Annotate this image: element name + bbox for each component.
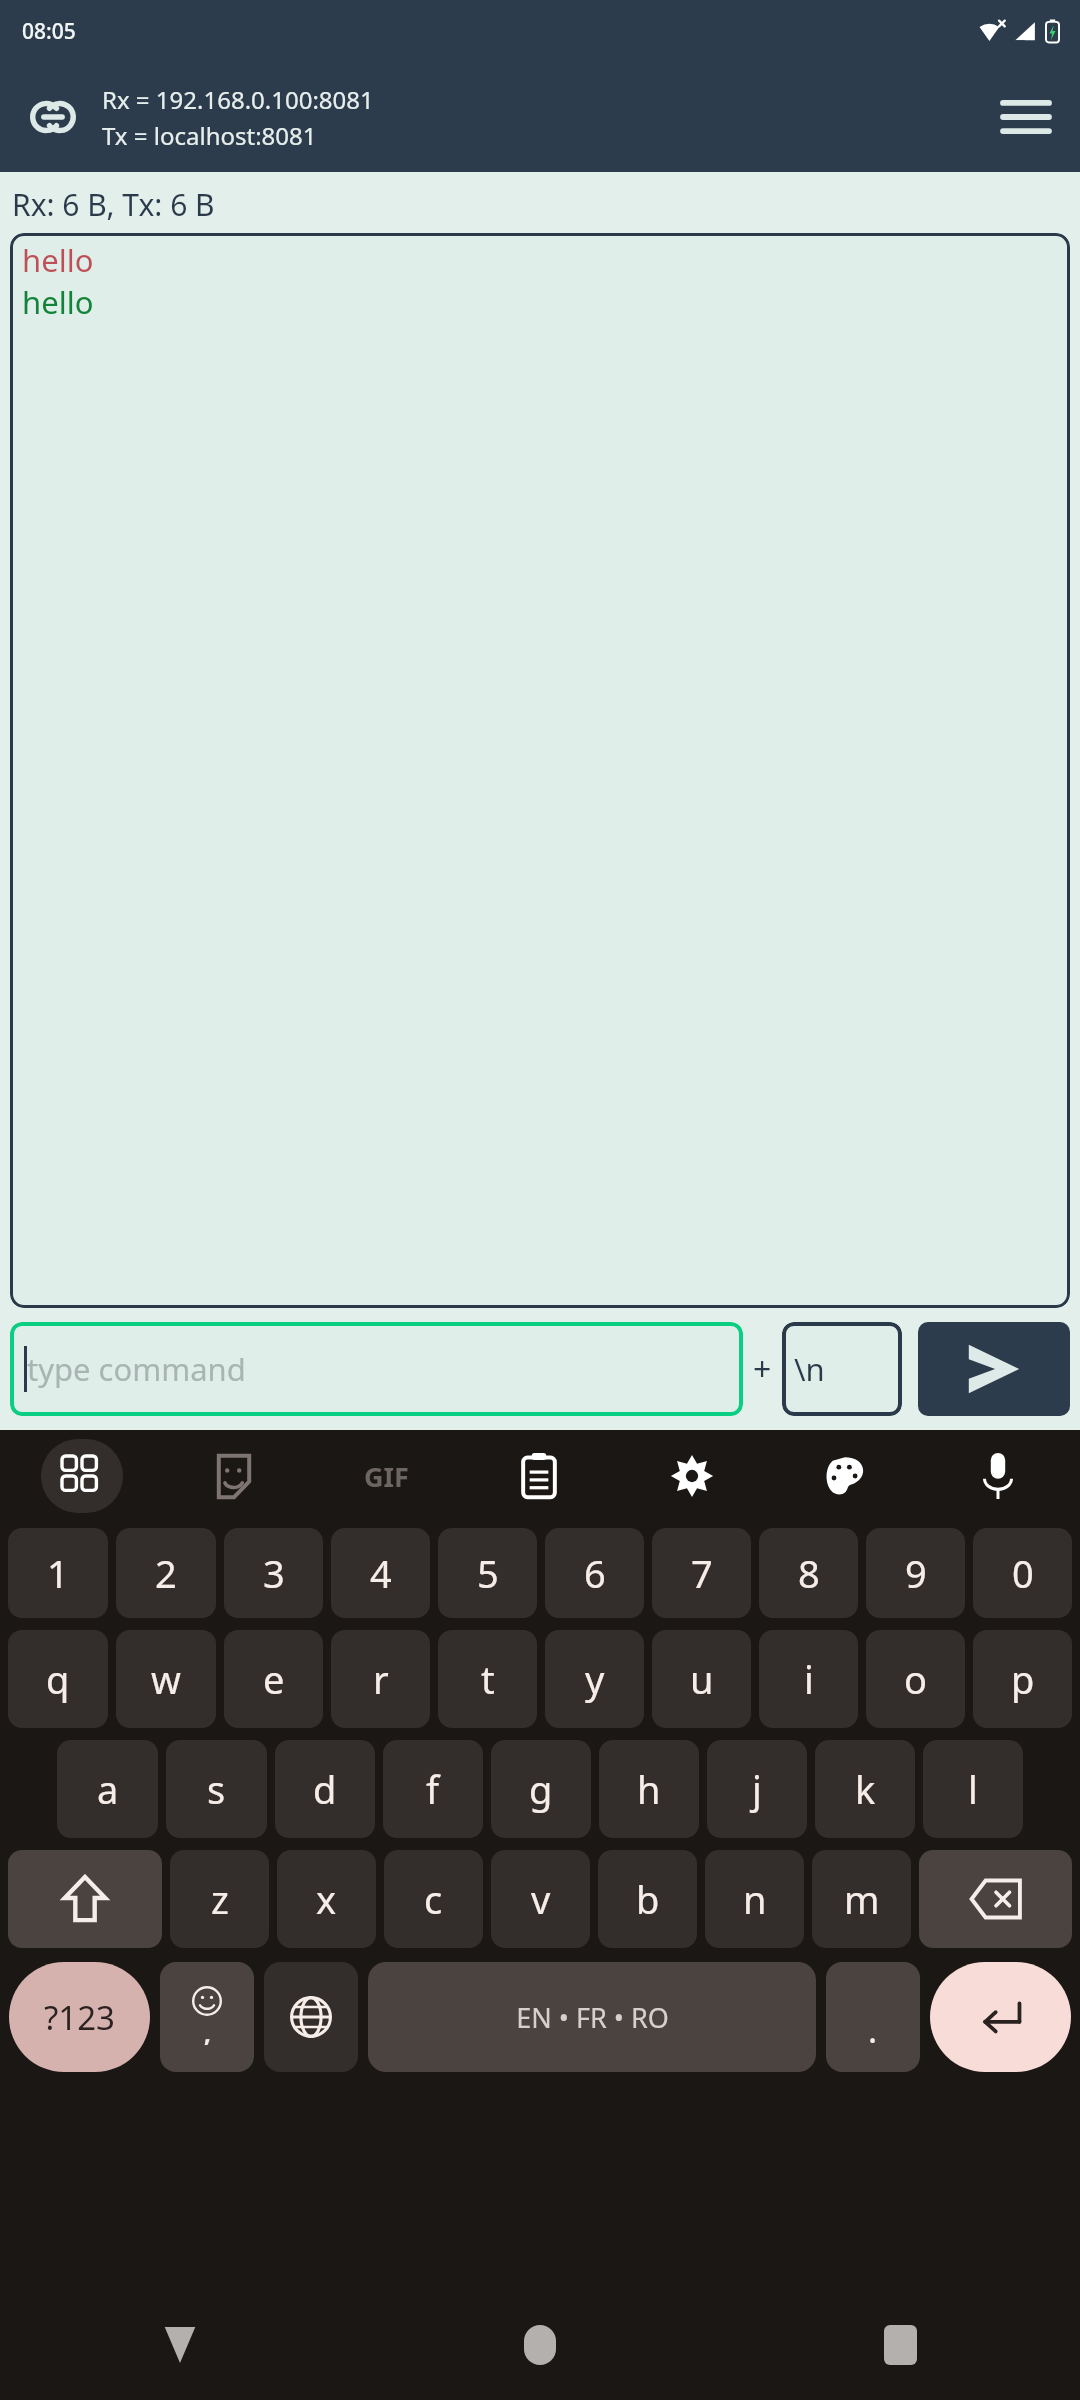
button[interactable]: t [438, 1630, 537, 1728]
staticText: y [585, 1653, 605, 1705]
staticText: hello [22, 239, 94, 281]
staticText: r [373, 1653, 389, 1705]
staticText: u [690, 1653, 714, 1705]
button[interactable]: Back [0, 2290, 360, 2400]
staticText: c [424, 1873, 443, 1925]
staticText: z [211, 1873, 229, 1925]
button[interactable]: i [759, 1630, 858, 1728]
button[interactable]: q [8, 1630, 108, 1728]
button[interactable]: g [491, 1740, 591, 1838]
staticText: s [207, 1763, 226, 1815]
button[interactable]: v [491, 1850, 590, 1948]
staticText: m [844, 1873, 880, 1925]
staticText: 5 [477, 1547, 499, 1599]
button[interactable]: 7 [652, 1528, 751, 1618]
button[interactable]: x [277, 1850, 376, 1948]
staticText: x [316, 1873, 337, 1925]
button[interactable]: hello [10, 233, 1070, 1308]
button[interactable]: Home [360, 2290, 720, 2400]
staticText: Rx: 6 B, Tx: 6 B [12, 184, 215, 225]
button[interactable]: 0 [973, 1528, 1072, 1618]
button[interactable]: Send [918, 1322, 1070, 1416]
staticText: f [426, 1763, 440, 1815]
staticText: a [97, 1763, 119, 1815]
button[interactable]: s [166, 1740, 267, 1838]
button[interactable]: 4 [331, 1528, 430, 1618]
staticText: l [968, 1763, 978, 1815]
button[interactable]: Emoji [160, 1962, 254, 2072]
button[interactable]: Menu [994, 85, 1058, 149]
staticText: 4 [370, 1547, 392, 1599]
staticText: t [481, 1653, 495, 1705]
button[interactable]: j [707, 1740, 807, 1838]
staticText: b [636, 1873, 660, 1925]
button[interactable]: e [224, 1630, 323, 1728]
staticText: j [752, 1763, 762, 1815]
button[interactable]: Change language [264, 1962, 358, 2072]
button[interactable]: a [57, 1740, 158, 1838]
staticText: Rx = 192.168.0.100:8081 [102, 83, 374, 116]
button[interactable]: r [331, 1630, 430, 1728]
button[interactable]: 1 [8, 1528, 108, 1618]
staticText: k [855, 1763, 876, 1815]
staticText: + [753, 1347, 772, 1391]
button[interactable]: 8 [759, 1528, 858, 1618]
staticText: 9 [905, 1547, 927, 1599]
button[interactable]: Theme [768, 1430, 921, 1522]
button[interactable]: \n [782, 1322, 902, 1416]
button[interactable]: Settings [615, 1430, 768, 1522]
button[interactable]: Connection [22, 86, 84, 148]
staticText: d [313, 1763, 337, 1815]
button[interactable]: Stickers [158, 1430, 310, 1522]
staticText: GIF [364, 1458, 409, 1495]
button[interactable]: f [383, 1740, 483, 1838]
button[interactable]: type command [10, 1322, 743, 1416]
staticText: . [868, 2007, 878, 2053]
button[interactable]: Recent apps [720, 2290, 1080, 2400]
button[interactable]: l [923, 1740, 1023, 1838]
button[interactable]: 6 [545, 1528, 644, 1618]
button[interactable]: c [384, 1850, 483, 1948]
staticText: 3 [263, 1547, 285, 1599]
button[interactable]: EN • FR • RO [368, 1962, 816, 2072]
staticText: w [151, 1653, 181, 1705]
button[interactable]: o [866, 1630, 965, 1728]
button[interactable]: ?123 [9, 1962, 150, 2072]
staticText: g [529, 1763, 553, 1815]
staticText: p [1011, 1653, 1035, 1705]
button[interactable]: b [598, 1850, 697, 1948]
button[interactable]: Enter [930, 1962, 1071, 2072]
staticText: , [204, 2016, 211, 2049]
staticText: e [263, 1653, 285, 1705]
button[interactable]: k [815, 1740, 915, 1838]
button[interactable]: m [812, 1850, 911, 1948]
staticText: 2 [155, 1547, 177, 1599]
button[interactable]: 5 [438, 1528, 537, 1618]
button[interactable]: GIF [310, 1430, 462, 1522]
button[interactable]: h [599, 1740, 699, 1838]
button[interactable]: z [170, 1850, 269, 1948]
staticText: Tx = localhost:8081 [102, 119, 317, 152]
button[interactable]: u [652, 1630, 751, 1728]
button[interactable]: y [545, 1630, 644, 1728]
button[interactable]: Shift [8, 1850, 162, 1948]
staticText: v [531, 1873, 551, 1925]
button[interactable]: Backspace [919, 1850, 1072, 1948]
button[interactable]: n [705, 1850, 804, 1948]
button[interactable]: Apps [6, 1430, 158, 1522]
button[interactable]: Voice input [921, 1430, 1074, 1522]
button[interactable]: 3 [224, 1528, 323, 1618]
staticText: 0 [1012, 1547, 1034, 1599]
button[interactable]: Clipboard [462, 1430, 615, 1522]
staticText: 08:05 [22, 17, 76, 46]
button[interactable]: 9 [866, 1528, 965, 1618]
staticText: 7 [691, 1547, 713, 1599]
staticText: type command [27, 1348, 246, 1390]
staticText: h [637, 1763, 661, 1815]
button[interactable]: 2 [116, 1528, 216, 1618]
button[interactable]: w [116, 1630, 216, 1728]
button[interactable]: p [973, 1630, 1072, 1728]
staticText: 8 [798, 1547, 820, 1599]
button[interactable]: d [275, 1740, 375, 1838]
button[interactable]: . [826, 1962, 920, 2072]
